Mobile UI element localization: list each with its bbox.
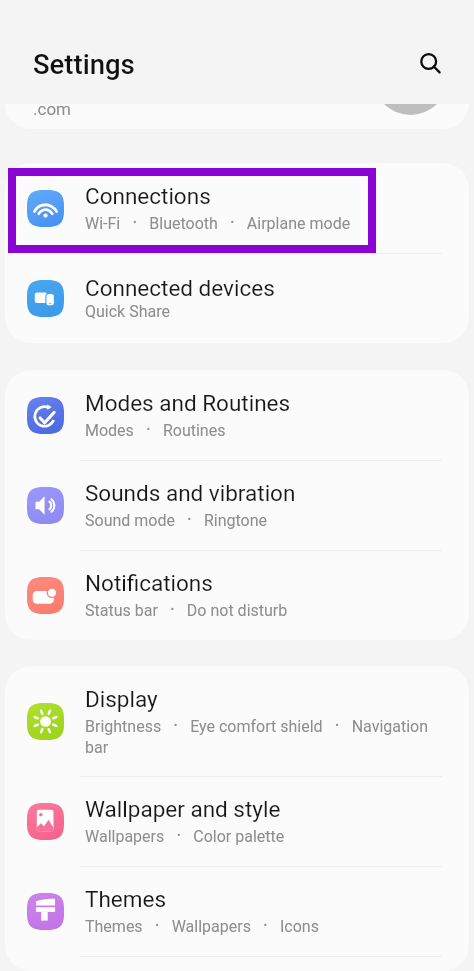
staticText: Sounds and vibration — [85, 480, 296, 506]
staticText: Wallpapers · Color palette — [85, 823, 285, 846]
staticText: Modes and Routines — [85, 390, 291, 416]
button[interactable]: Search — [406, 39, 454, 87]
button[interactable]: Connections — [5, 163, 469, 253]
staticText: Brightness · Eye comfort shield · Naviga… — [85, 713, 435, 757]
staticText: Themes · Wallpapers · Icons — [85, 913, 319, 936]
staticText: .com — [33, 99, 71, 119]
button[interactable]: Notifications — [5, 550, 469, 640]
staticText: Quick Share — [85, 302, 170, 321]
staticText: Modes · Routines — [85, 417, 226, 440]
staticText: Settings — [33, 48, 135, 80]
button[interactable]: Modes and Routines — [5, 370, 469, 460]
button[interactable]: Themes — [5, 866, 469, 956]
staticText: Sound mode · Ringtone — [85, 507, 268, 530]
staticText: Display — [85, 686, 158, 712]
button[interactable]: Wallpaper and style — [5, 776, 469, 866]
staticText: Themes — [85, 886, 167, 912]
staticText: Status bar · Do not disturb — [85, 597, 288, 620]
staticText: Connected devices — [85, 275, 275, 301]
staticText: Wallpaper and style — [85, 796, 281, 822]
staticText: Wi-Fi · Bluetooth · Airplane mode — [85, 210, 351, 233]
staticText: Notifications — [85, 570, 213, 596]
button[interactable]: Sounds and vibration — [5, 460, 469, 550]
button[interactable]: Display — [5, 666, 469, 776]
staticText: Connections — [85, 183, 211, 209]
button[interactable]: Connected devices — [5, 253, 469, 343]
